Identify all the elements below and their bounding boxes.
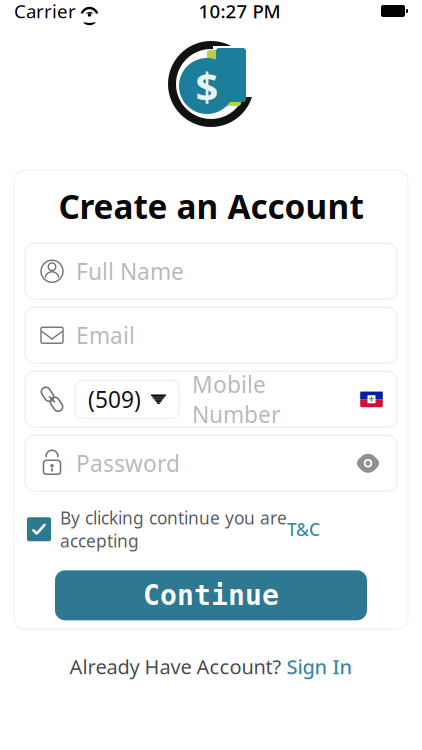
button[interactable]: Sign In <box>286 653 352 680</box>
staticText: 10:27 PM <box>198 0 280 23</box>
staticText: Continue <box>143 579 279 611</box>
button[interactable]: Continue <box>55 570 367 620</box>
staticText: (509) <box>88 384 141 414</box>
staticText: Password <box>76 448 180 478</box>
staticText: By clicking continue you are accepting <box>60 506 287 552</box>
staticText: $ <box>195 59 218 112</box>
button[interactable]: Email <box>25 307 397 363</box>
staticText: ⚜ <box>368 395 375 404</box>
button[interactable]: Full Name <box>25 243 397 299</box>
staticText: Mobile Number <box>192 369 280 429</box>
staticText: Carrier <box>14 0 76 23</box>
staticText: Email <box>76 320 135 350</box>
staticText: Already Have Account? <box>69 653 286 680</box>
button[interactable]: Show password <box>353 451 383 475</box>
staticText: Full Name <box>76 256 184 286</box>
button[interactable]: T&C <box>287 518 320 541</box>
button[interactable]: Select country <box>360 391 383 407</box>
staticText: T&C <box>287 518 320 541</box>
staticText: Sign In <box>286 653 352 680</box>
button[interactable]: (509) <box>75 380 179 418</box>
button[interactable]: Accept terms and conditions <box>27 517 51 541</box>
staticText: Create an Account <box>58 184 363 228</box>
